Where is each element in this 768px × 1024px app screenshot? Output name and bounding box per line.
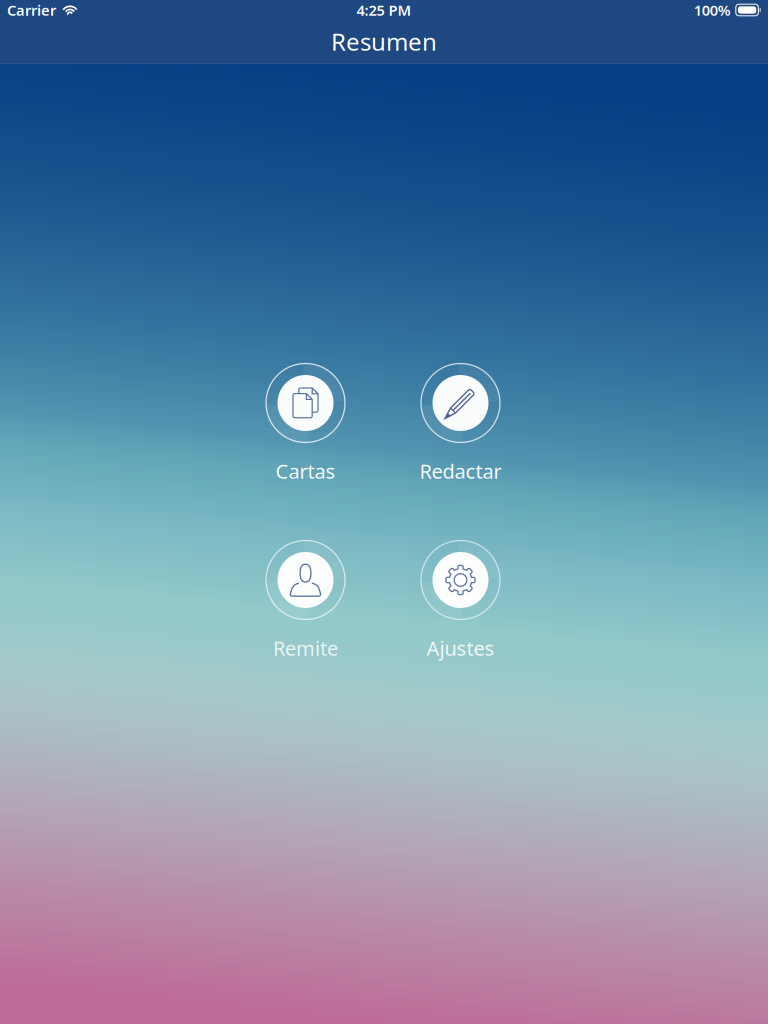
staticText: Redactar: [419, 458, 501, 484]
staticText: Cartas: [275, 458, 335, 484]
button[interactable]: Ajustes: [390, 540, 530, 657]
staticText: 4:25 PM: [356, 0, 411, 20]
staticText: Remite: [273, 635, 338, 661]
button[interactable]: Remite: [235, 540, 375, 657]
staticText: Ajustes: [426, 635, 494, 661]
staticText: 100%: [694, 0, 731, 20]
staticText: Carrier: [7, 0, 56, 20]
button[interactable]: Redactar: [390, 363, 530, 480]
staticText: Resumen: [331, 26, 437, 57]
button[interactable]: Cartas: [235, 363, 375, 480]
